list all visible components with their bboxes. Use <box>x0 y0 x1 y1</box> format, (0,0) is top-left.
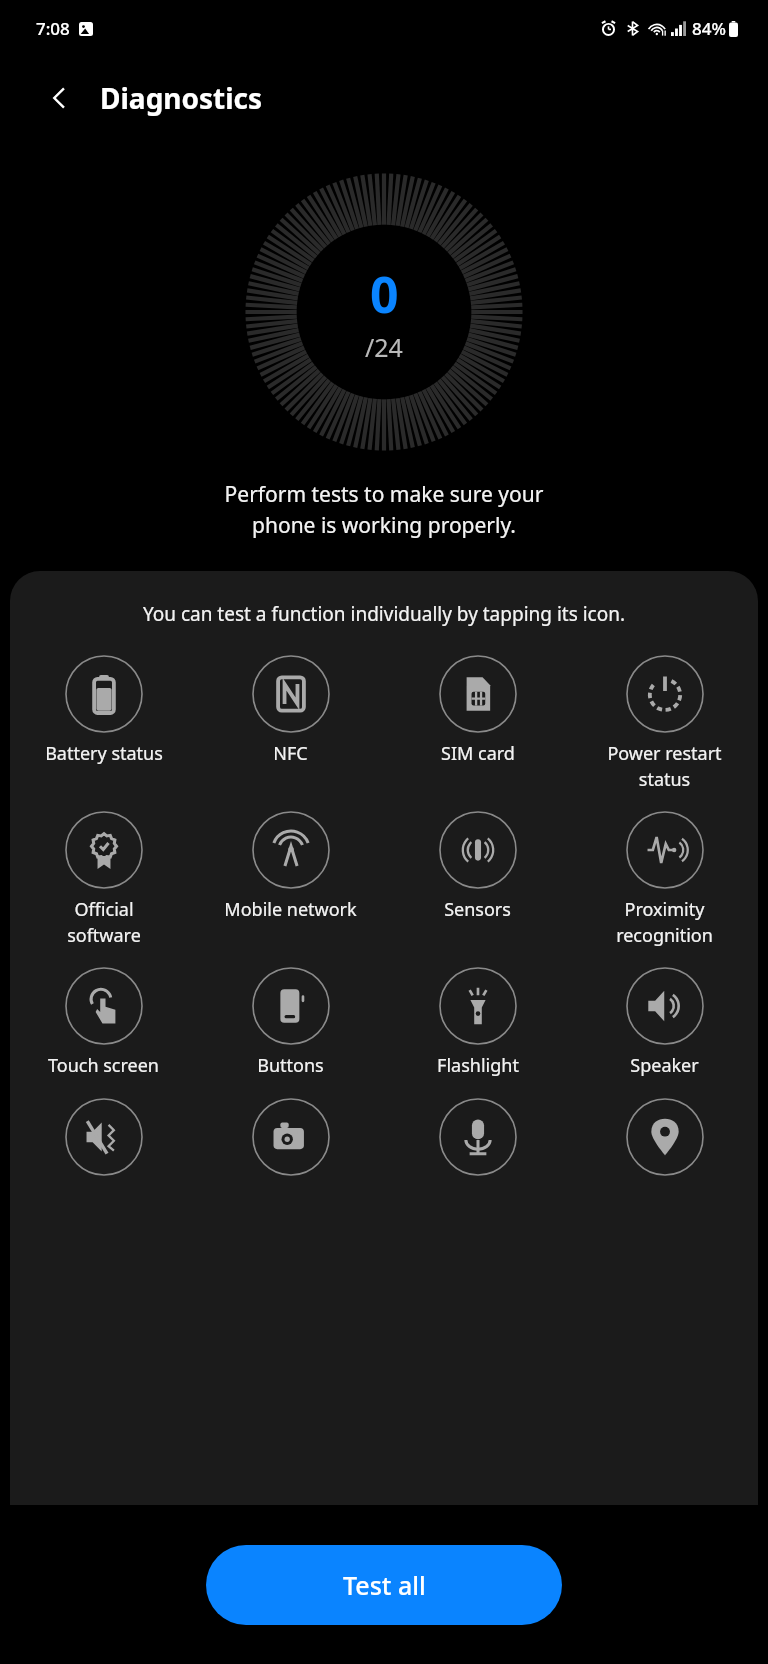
button[interactable]: Camera <box>197 1094 384 1180</box>
button[interactable]: Battery status <box>10 651 197 770</box>
staticText: Proximity recognition <box>616 897 713 947</box>
button[interactable]: Mobile network <box>197 807 384 926</box>
staticText: /24 <box>365 330 403 364</box>
staticText: Mobile network <box>224 897 357 922</box>
button[interactable]: Location <box>571 1094 758 1180</box>
staticText: Diagnostics <box>100 79 263 117</box>
staticText: You can test a function individually by … <box>26 601 742 627</box>
button[interactable]: Proximity recognition <box>571 807 758 951</box>
staticText: Buttons <box>257 1053 324 1078</box>
button[interactable]: Touch screen <box>10 963 197 1082</box>
staticText: Power restart status <box>607 741 722 791</box>
staticText: Sensors <box>444 897 511 922</box>
staticText: 84% <box>692 17 726 40</box>
button[interactable]: Sensors <box>384 807 571 926</box>
staticText: Touch screen <box>48 1053 159 1078</box>
button[interactable]: Flashlight <box>384 963 571 1082</box>
staticText: Speaker <box>630 1053 699 1078</box>
button[interactable]: Buttons <box>197 963 384 1082</box>
staticText: SIM card <box>441 741 515 766</box>
button[interactable]: Microphone <box>384 1094 571 1180</box>
staticText: NFC <box>273 741 308 766</box>
staticText: Perform tests to make sure your phone is… <box>0 480 768 539</box>
staticText: Battery status <box>45 741 163 766</box>
button[interactable]: NFC <box>197 651 384 770</box>
staticText: Official software <box>67 897 141 947</box>
button[interactable]: Test all <box>206 1545 562 1625</box>
staticText: 0 <box>370 260 399 328</box>
button[interactable]: Power restart status <box>571 651 758 795</box>
button[interactable]: Speaker <box>571 963 758 1082</box>
staticText: 7:08 <box>36 17 70 40</box>
button[interactable]: Vibration <box>10 1094 197 1180</box>
staticText: Test all <box>343 1568 426 1602</box>
button[interactable]: SIM card <box>384 651 571 770</box>
button[interactable]: Official software <box>10 807 197 951</box>
staticText: Flashlight <box>437 1053 519 1078</box>
button[interactable]: Back <box>34 72 86 124</box>
